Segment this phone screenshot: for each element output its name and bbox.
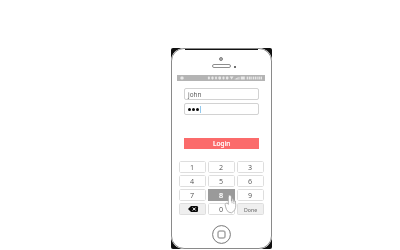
other: Backspace — [188, 206, 198, 212]
button[interactable]: 6 — [237, 175, 264, 187]
staticText: 3 — [248, 162, 253, 172]
staticText: 6 — [248, 176, 253, 186]
staticText: 1 — [190, 162, 195, 172]
button[interactable]: 8 — [208, 189, 235, 201]
staticText: 5 — [219, 176, 224, 186]
staticText: Done — [244, 206, 258, 213]
button[interactable]: 9 — [237, 189, 264, 201]
button[interactable]: 1 — [179, 161, 206, 173]
button[interactable] — [184, 103, 259, 115]
staticText: Login — [213, 139, 231, 148]
staticText: 4 — [190, 176, 195, 186]
staticText: 0 — [219, 204, 224, 214]
button[interactable]: 4 — [179, 175, 206, 187]
button[interactable]: Backspace — [179, 203, 206, 215]
button[interactable]: Done — [237, 203, 264, 215]
staticText: 2 — [219, 162, 224, 172]
button[interactable]: john — [184, 88, 259, 100]
button[interactable]: Login — [184, 138, 259, 149]
button[interactable]: 5 — [208, 175, 235, 187]
staticText: john — [188, 90, 202, 99]
button[interactable]: Home — [212, 225, 231, 244]
staticText: 8 — [219, 190, 224, 200]
button[interactable]: 0 — [208, 203, 235, 215]
staticText: 9 — [248, 190, 253, 200]
button[interactable]: 7 — [179, 189, 206, 201]
button[interactable]: 3 — [237, 161, 264, 173]
staticText: 7 — [190, 190, 195, 200]
button[interactable]: 2 — [208, 161, 235, 173]
